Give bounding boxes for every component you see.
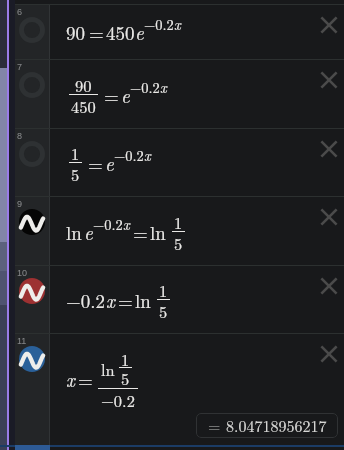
staticText: 90	[66, 19, 86, 46]
staticText: 9	[17, 199, 23, 209]
staticText: 450	[71, 94, 96, 117]
staticText: 6	[17, 7, 23, 17]
staticText: ln	[66, 219, 82, 246]
staticText: =	[89, 19, 104, 46]
staticText: −0.2	[114, 145, 144, 166]
staticText: 1	[121, 347, 130, 370]
staticText: x	[123, 214, 130, 235]
staticText: 1	[159, 278, 168, 301]
staticText: e	[84, 219, 93, 246]
staticText: 5	[174, 231, 183, 254]
button[interactable]: Toggle expression 9	[15, 197, 344, 266]
staticText: −0.2	[130, 77, 160, 98]
staticText: x	[144, 145, 151, 166]
staticText: 1	[174, 210, 183, 233]
staticText: x	[160, 77, 167, 98]
staticText: =	[133, 219, 148, 246]
staticText: −0.2	[144, 14, 174, 35]
staticText: ln	[150, 219, 166, 246]
staticText: ln	[101, 357, 115, 380]
button[interactable]: Toggle expression 8	[15, 129, 344, 197]
staticText: 11	[17, 336, 27, 346]
staticText: 90	[75, 73, 92, 96]
button[interactable]: Toggle expression 11	[15, 334, 49, 450]
staticText: 7	[17, 62, 23, 72]
button[interactable]: Toggle expression 7	[15, 60, 49, 129]
staticText: −0.2	[101, 388, 135, 411]
staticText: ln	[135, 287, 151, 314]
button[interactable]: Delete expression 7	[318, 69, 340, 91]
staticText: −0.2	[93, 214, 123, 235]
staticText: 1	[71, 141, 80, 164]
staticText: x	[106, 287, 115, 314]
button[interactable]: Toggle expression 6	[15, 5, 344, 60]
button[interactable]: Toggle expression 7	[15, 60, 344, 129]
button[interactable]: Delete expression 9	[318, 206, 340, 228]
button[interactable]: Toggle expression 10	[15, 266, 344, 334]
staticText: e	[121, 82, 130, 109]
staticText: 5	[71, 162, 80, 185]
staticText: =	[88, 150, 103, 177]
button[interactable]: Toggle expression 11	[15, 334, 344, 450]
staticText: =	[78, 366, 93, 393]
staticText: −0.2	[66, 287, 106, 314]
button[interactable]: Delete expression 6	[318, 14, 340, 36]
staticText: x	[66, 366, 75, 393]
button[interactable]: Delete expression 8	[318, 138, 340, 160]
staticText: e	[105, 150, 114, 177]
button[interactable]: Delete expression 11	[318, 343, 340, 365]
staticText: x	[174, 14, 181, 35]
staticText: e	[135, 19, 144, 46]
button[interactable]: Toggle expression 9	[15, 197, 49, 266]
button[interactable]: Toggle expression 8	[15, 129, 49, 197]
button[interactable]: Toggle expression 10	[15, 266, 49, 334]
staticText: 450	[106, 19, 135, 46]
button[interactable]: Delete expression 10	[318, 275, 340, 297]
staticText: 5	[121, 366, 130, 389]
staticText: =	[104, 82, 119, 109]
button[interactable]: =	[196, 413, 338, 438]
staticText: 8	[17, 131, 23, 141]
staticText: 8.04718956217	[226, 414, 327, 437]
staticText: =	[208, 414, 221, 437]
staticText: 5	[159, 299, 168, 322]
staticText: 10	[17, 268, 28, 278]
button[interactable]: Toggle expression 6	[15, 5, 49, 60]
staticText: =	[118, 287, 133, 314]
